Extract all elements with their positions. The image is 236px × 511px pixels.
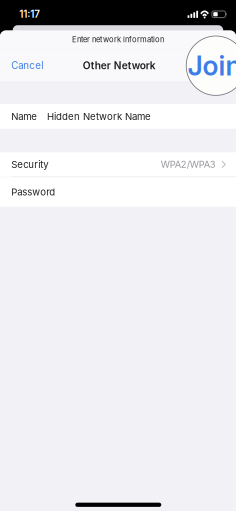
staticText: WPA2/WPA3 xyxy=(161,159,216,170)
staticText: Security xyxy=(11,159,48,170)
staticText: Enter network information xyxy=(72,35,164,44)
button[interactable]: Security xyxy=(0,152,236,177)
staticText: 11:17 xyxy=(19,8,40,20)
staticText: Hidden Network Name xyxy=(47,111,151,122)
staticText: Other Network xyxy=(83,59,156,72)
staticText: Password xyxy=(11,186,55,198)
staticText: Name xyxy=(11,111,37,122)
button[interactable]: Join xyxy=(193,52,236,78)
staticText: Join xyxy=(187,50,236,82)
staticText: Cancel xyxy=(11,60,43,71)
staticText: Join xyxy=(204,59,225,72)
button[interactable]: Cancel xyxy=(0,52,54,78)
